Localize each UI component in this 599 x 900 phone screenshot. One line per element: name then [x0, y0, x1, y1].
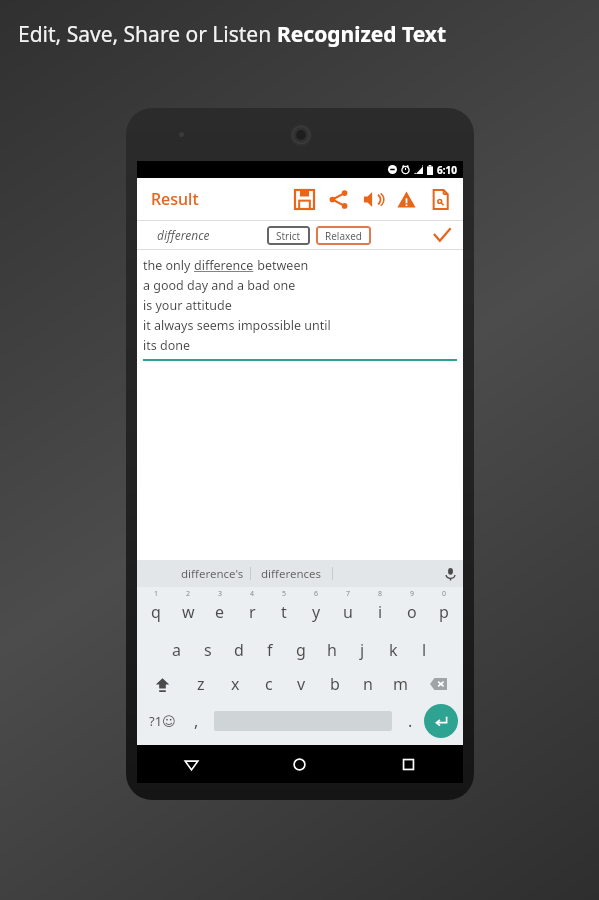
staticText: n [363, 673, 373, 695]
button[interactable]: w [172, 597, 204, 627]
button[interactable]: , [182, 706, 210, 736]
staticText: k [389, 639, 398, 661]
button[interactable]: n [351, 669, 384, 699]
staticText: i [378, 601, 383, 623]
button[interactable]: Back [137, 745, 245, 783]
button[interactable]: g [285, 635, 316, 665]
staticText: is your attitude [143, 297, 232, 314]
button[interactable]: r [236, 597, 268, 627]
button[interactable]: y [300, 597, 332, 627]
staticText: c [265, 673, 273, 695]
staticText: differences [261, 566, 322, 582]
staticText: ?1☺ [149, 712, 176, 730]
button[interactable]: Shift [140, 667, 184, 701]
staticText: y [312, 601, 321, 623]
button[interactable]: e [204, 597, 236, 627]
button[interactable]: Relaxed [316, 226, 371, 245]
button[interactable]: b [318, 669, 351, 699]
button[interactable]: z [184, 669, 218, 699]
button[interactable]: f [254, 635, 285, 665]
staticText: Relaxed [325, 229, 362, 243]
button[interactable]: Result [137, 188, 205, 210]
staticText: p [439, 601, 449, 623]
button[interactable]: p [428, 597, 460, 627]
staticText: t [281, 601, 287, 623]
staticText: Strict [276, 229, 301, 243]
button[interactable]: ?1☺ [142, 701, 182, 741]
staticText: it always seems impossible until [143, 317, 331, 334]
button[interactable]: Strict [267, 226, 310, 245]
staticText: a [172, 639, 181, 661]
button[interactable]: v [285, 669, 318, 699]
staticText: 6 [314, 589, 319, 599]
button[interactable]: d [223, 635, 254, 665]
staticText: difference [194, 257, 254, 274]
staticText: 7 [346, 589, 351, 599]
button[interactable]: Warning [389, 178, 423, 220]
staticText: 6:10 [437, 163, 457, 177]
button[interactable]: a [160, 635, 192, 665]
staticText: s [204, 639, 212, 661]
staticText: r [249, 601, 256, 623]
button[interactable]: Confirm [429, 222, 455, 248]
button[interactable]: h [316, 635, 347, 665]
staticText: 3 [218, 589, 223, 599]
staticText: h [327, 639, 337, 661]
staticText: o [407, 601, 417, 623]
staticText: f [267, 639, 273, 661]
staticText: w [182, 601, 195, 623]
staticText: , [194, 710, 199, 732]
staticText: l [422, 639, 427, 661]
staticText: difference [157, 227, 210, 243]
button[interactable]: differences [251, 566, 332, 582]
button[interactable]: Listen [355, 178, 389, 220]
staticText: j [360, 639, 365, 661]
button[interactable]: Backspace [417, 667, 460, 701]
button[interactable]: o [396, 597, 428, 627]
staticText: q [151, 601, 161, 623]
button[interactable]: Home [245, 745, 354, 783]
button[interactable]: . [396, 706, 424, 736]
button[interactable]: k [378, 635, 409, 665]
staticText: a good day and a bad one [143, 277, 296, 294]
button[interactable]: Recents [354, 745, 463, 783]
staticText: u [343, 601, 353, 623]
staticText: the only [143, 257, 194, 274]
button[interactable]: Enter [424, 704, 458, 738]
button[interactable]: x [218, 669, 252, 699]
staticText: Result [151, 188, 199, 210]
button[interactable]: j [347, 635, 378, 665]
staticText: x [231, 673, 240, 695]
staticText: 5 [282, 589, 287, 599]
staticText: v [297, 673, 306, 695]
staticText: 1 [154, 589, 159, 599]
staticText: Recognized Text [277, 20, 447, 49]
staticText: m [393, 673, 408, 695]
button[interactable]: m [384, 669, 417, 699]
staticText: e [215, 601, 225, 623]
button[interactable]: q [140, 597, 172, 627]
staticText: 8 [378, 589, 383, 599]
button[interactable]: c [252, 669, 285, 699]
staticText: d [234, 639, 244, 661]
staticText: z [197, 673, 205, 695]
staticText: Edit, Save, Share or Listen [18, 20, 277, 49]
button[interactable]: t [268, 597, 300, 627]
button[interactable]: Share [321, 178, 355, 220]
staticText: 4 [250, 589, 255, 599]
button[interactable]: Voice input [437, 561, 463, 587]
staticText: 0 [442, 589, 447, 599]
staticText: difference's [181, 566, 244, 582]
staticText: 9 [410, 589, 415, 599]
staticText: g [296, 639, 306, 661]
button[interactable]: l [409, 635, 440, 665]
button[interactable]: Save [287, 178, 321, 220]
button[interactable]: difference's [175, 566, 250, 582]
button[interactable]: u [332, 597, 364, 627]
button[interactable]: i [364, 597, 396, 627]
button[interactable]: s [192, 635, 223, 665]
staticText: its done [143, 337, 191, 354]
staticText: between [254, 257, 309, 274]
button[interactable]: Document [423, 178, 457, 220]
